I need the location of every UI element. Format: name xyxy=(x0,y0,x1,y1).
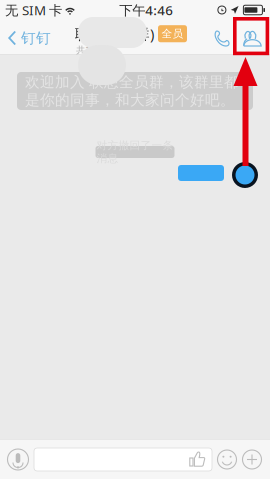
staticText: 共1523人 xyxy=(76,43,114,56)
staticText: 联想全员群) xyxy=(75,24,154,43)
button[interactable]: Voice message xyxy=(0,448,34,470)
button[interactable]: Emoji xyxy=(212,449,242,469)
button[interactable]: 钉钉 xyxy=(0,20,61,56)
staticText: 全员 xyxy=(161,27,183,40)
staticText: 钉钉 xyxy=(21,29,51,47)
staticText: 欢迎加入 联想全员群，该群里都是你的同事，和大家问个好吧。 xyxy=(25,73,239,109)
button[interactable]: Group members xyxy=(237,22,268,55)
button[interactable]: Call xyxy=(207,21,237,56)
staticText: 无 SIM 卡 xyxy=(5,1,62,19)
staticText: 下午4:46 xyxy=(119,1,173,19)
staticText: 对方撤回了一条消息 xyxy=(96,139,173,165)
button[interactable]: More xyxy=(242,449,270,469)
